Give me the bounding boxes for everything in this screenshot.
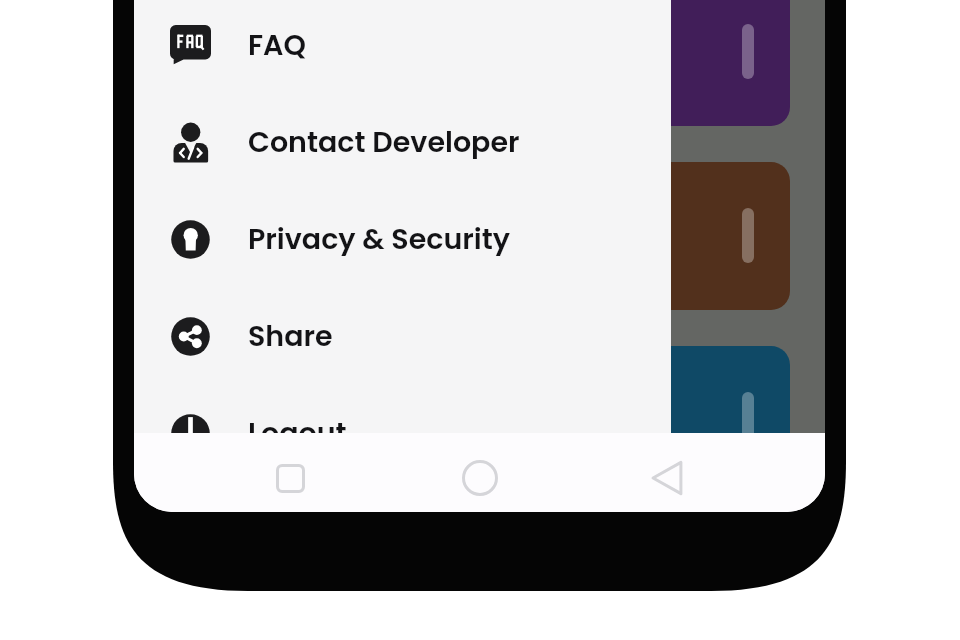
staticText: Privacy & Security (248, 219, 510, 259)
button[interactable]: Privacy & Security (134, 191, 671, 288)
button[interactable]: Home (456, 454, 504, 502)
button[interactable]: Logout (134, 385, 671, 433)
button[interactable] (541, 346, 790, 494)
staticText: Share (248, 316, 333, 356)
staticText: Contact Developer (248, 122, 520, 162)
staticText: Logout (248, 413, 347, 433)
button[interactable] (541, 162, 790, 310)
button[interactable] (541, 0, 790, 126)
button[interactable]: Back (644, 454, 692, 502)
staticText: FAQ (248, 25, 306, 65)
button[interactable]: FAQ (134, 0, 671, 94)
button[interactable]: Recents (266, 454, 314, 502)
button[interactable]: Share (134, 288, 671, 385)
button[interactable]: Contact Developer (134, 94, 671, 191)
